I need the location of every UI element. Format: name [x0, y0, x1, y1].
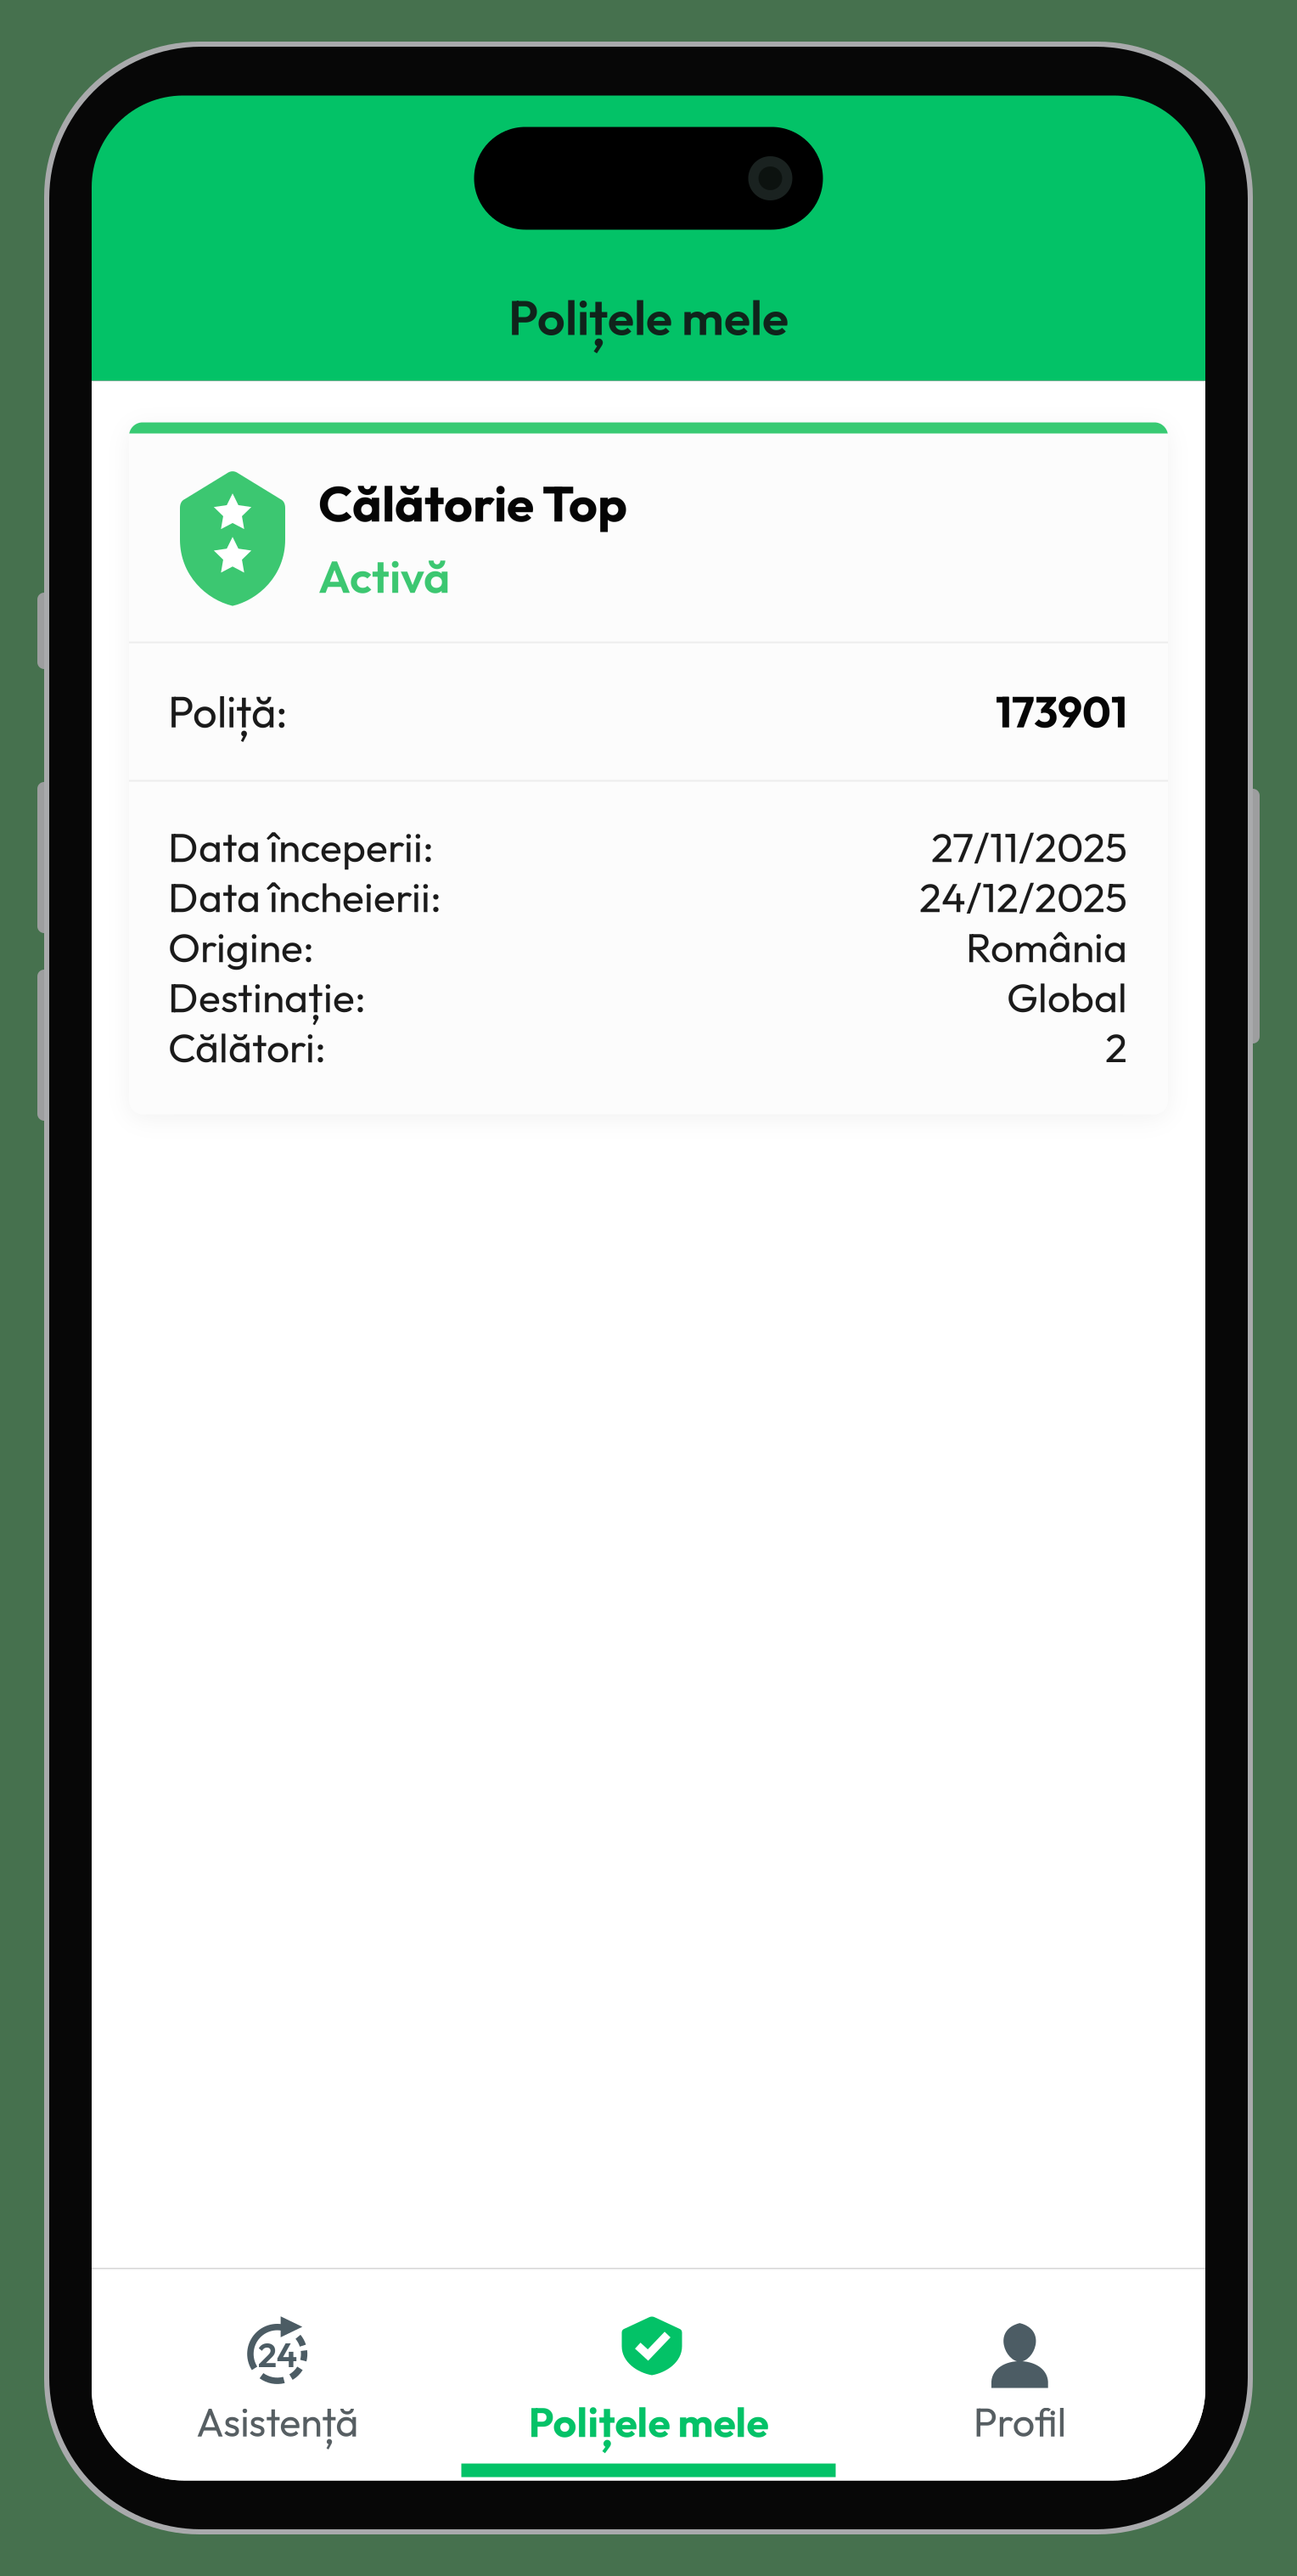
button[interactable]: Polițele mele	[463, 2270, 834, 2480]
staticText: Data încheierii:	[168, 871, 441, 923]
staticText: 24/12/2025	[919, 871, 1127, 923]
staticText: Global	[1007, 972, 1127, 1023]
staticText: Data începerii:	[168, 821, 434, 873]
button[interactable]: 24	[92, 2270, 463, 2480]
button[interactable]: Profil	[834, 2270, 1205, 2480]
staticText: România	[966, 922, 1127, 973]
staticText: Destinație:	[168, 972, 366, 1023]
staticText: Polițele mele	[508, 286, 789, 348]
staticText: Activă	[318, 548, 450, 605]
staticText: Origine:	[168, 922, 314, 973]
staticText: Asistență	[196, 2397, 358, 2447]
staticText: Profil	[973, 2397, 1066, 2447]
staticText: 27/11/2025	[931, 821, 1127, 873]
staticText: 2	[1105, 1022, 1127, 1073]
staticText: Călători:	[168, 1022, 326, 1073]
staticText: 173901	[996, 684, 1127, 739]
staticText: Poliță:	[168, 684, 288, 739]
staticText: Călătorie Top	[318, 472, 627, 534]
staticText: Polițele mele	[528, 2396, 769, 2448]
staticText: 24	[258, 2333, 297, 2376]
